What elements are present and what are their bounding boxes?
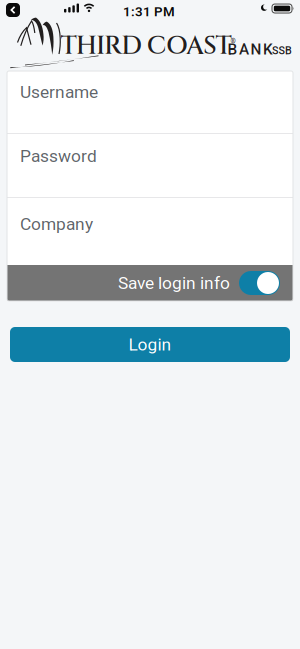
staticText: 1:31 PM	[123, 4, 175, 20]
staticText: B	[227, 40, 237, 58]
staticText: Login	[128, 334, 171, 355]
button[interactable]: Password	[7, 134, 293, 197]
button[interactable]: Login	[10, 327, 290, 362]
staticText: ®	[230, 37, 235, 45]
staticText: Username	[20, 82, 98, 102]
staticText: Company	[20, 214, 93, 234]
button[interactable]: Username	[7, 71, 293, 133]
staticText: S	[272, 44, 278, 57]
staticText: A	[239, 40, 249, 58]
staticText: Save login info	[118, 273, 230, 293]
staticText: B	[285, 44, 292, 57]
button[interactable]: Back to previous app	[6, 3, 20, 17]
button[interactable]: Save login info	[239, 271, 280, 295]
staticText: S	[278, 44, 284, 57]
staticText: THIRD COAST	[60, 29, 231, 63]
staticText: N	[250, 40, 261, 58]
staticText: Password	[20, 146, 97, 166]
staticText: K	[263, 40, 273, 58]
button[interactable]: Company	[7, 198, 293, 265]
